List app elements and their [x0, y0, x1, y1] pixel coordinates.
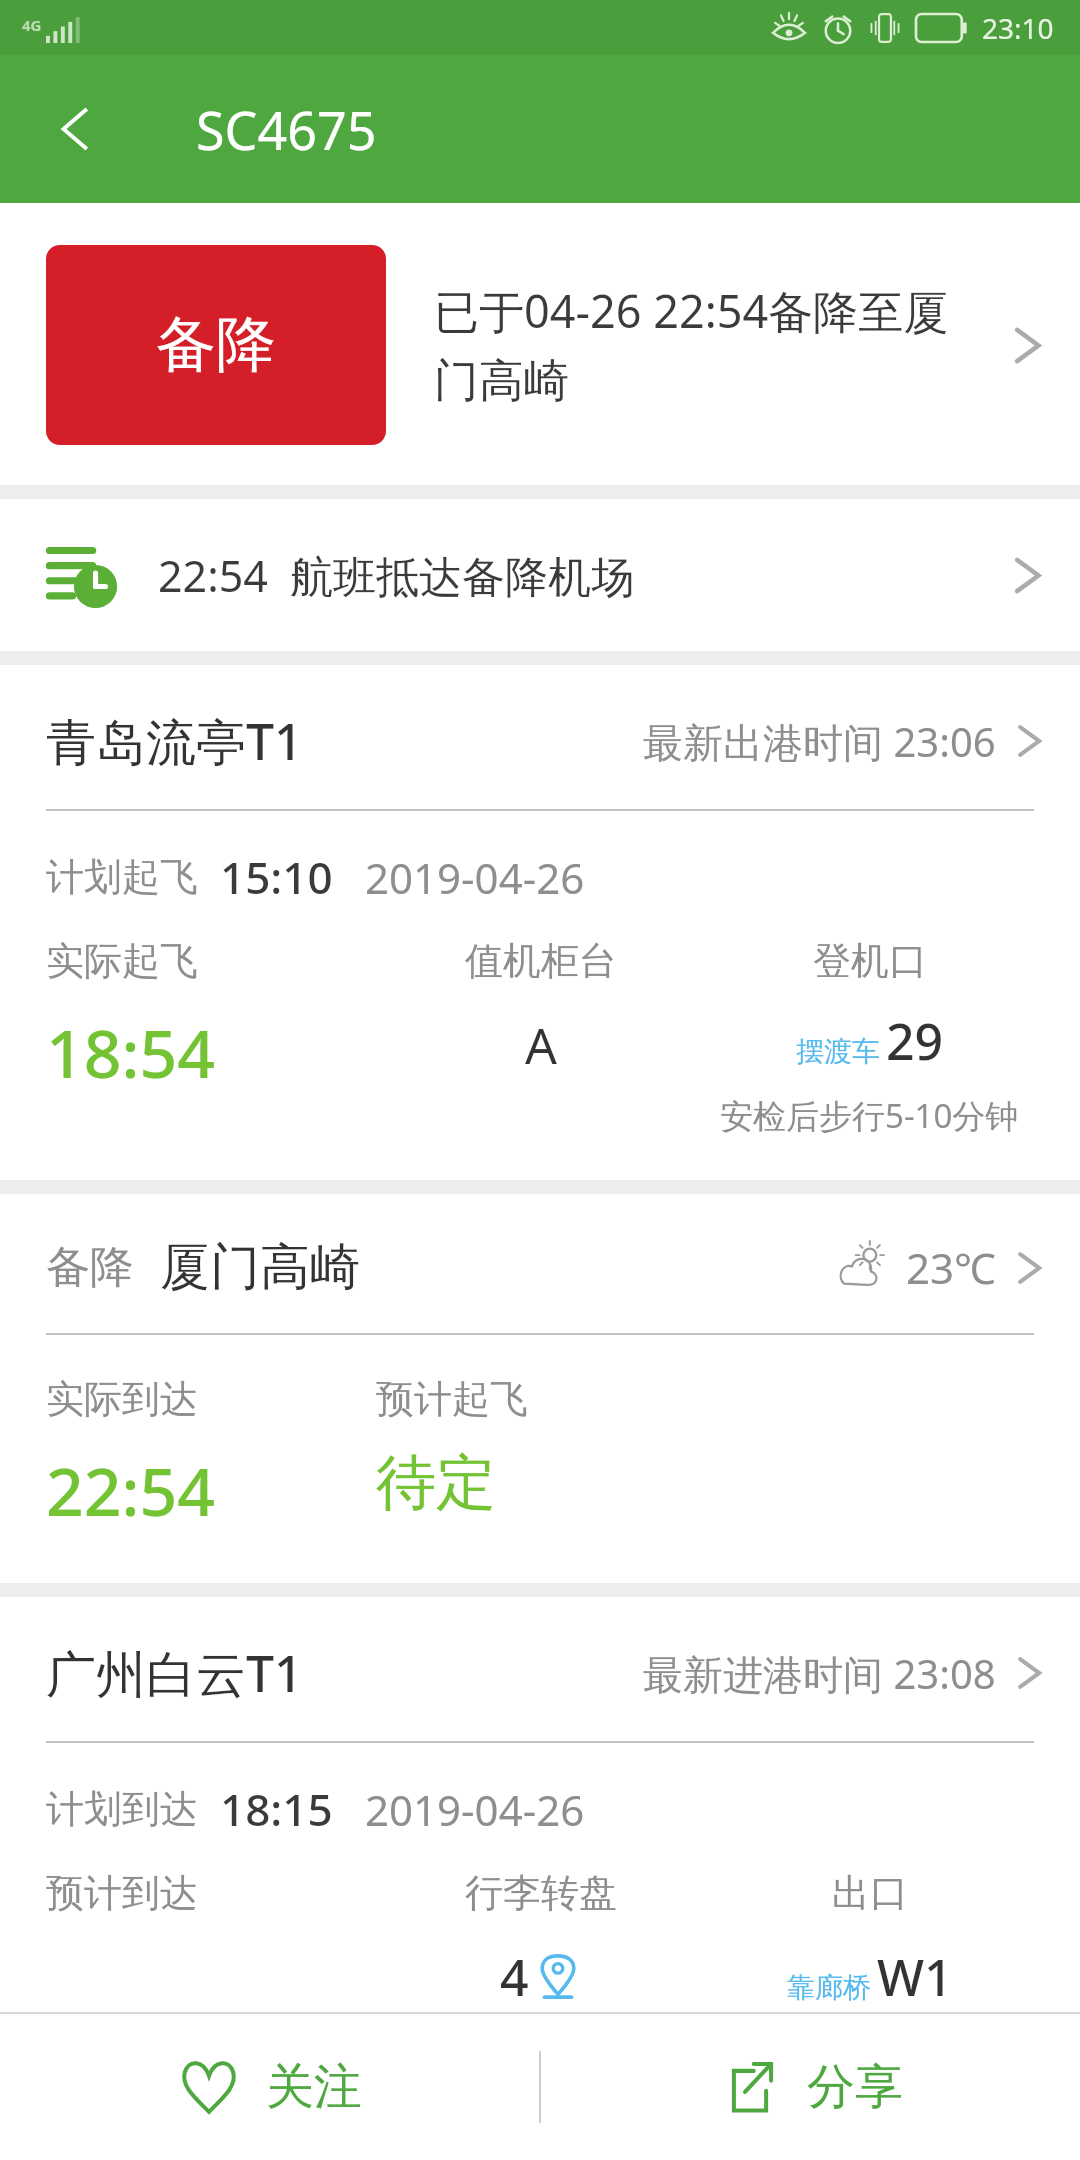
staticText: 23:10 — [982, 9, 1054, 47]
staticText: 分享 — [807, 2057, 903, 2117]
staticText: W1 — [877, 1943, 953, 2011]
button[interactable]: Back — [26, 79, 126, 179]
staticText: 出口 — [832, 1869, 908, 1917]
staticText: 18:54 — [46, 1007, 215, 1097]
staticText: 22:54 航班抵达备降机场 — [158, 546, 1008, 605]
staticText: 安检后步行5-10分钟 — [720, 1093, 1019, 1138]
staticText: 计划到达 — [46, 1785, 198, 1833]
staticText: 实际到达 — [46, 1375, 198, 1423]
staticText: 备降 — [156, 307, 276, 383]
button[interactable]: 22:54 航班抵达备降机场 — [0, 499, 1080, 651]
staticText: 最新出港时间 23:06 — [643, 714, 996, 769]
button[interactable]: 青岛流亭T1 — [0, 665, 1080, 809]
staticText: 待定 — [376, 1445, 496, 1521]
staticText: 23℃ — [906, 1239, 996, 1296]
staticText: 广州白云T1 — [46, 1639, 303, 1707]
staticText: 值机柜台 — [465, 937, 617, 985]
button[interactable]: 分享 — [541, 2014, 1080, 2160]
staticText: 行李转盘 — [465, 1869, 617, 1917]
staticText: 15:10 — [220, 847, 333, 907]
staticText: 计划起飞 — [46, 853, 198, 901]
button[interactable]: 备降 — [0, 203, 1080, 485]
staticText: 实际起飞 — [46, 937, 198, 985]
staticText: 厦门高崎 — [160, 1236, 360, 1299]
staticText: 门高崎 — [434, 353, 569, 410]
staticText: 2019-04-26 — [365, 1781, 585, 1838]
button[interactable]: 广州白云T1 — [0, 1597, 1080, 1741]
staticText: 摆渡车 — [796, 1034, 880, 1069]
staticText: 已于04-26 22:54备降至厦 — [434, 280, 949, 341]
staticText: 2019-04-26 — [365, 849, 585, 906]
staticText: 关注 — [266, 2057, 362, 2117]
staticText: 预计起飞 — [376, 1375, 528, 1423]
staticText: 最新进港时间 23:08 — [643, 1646, 996, 1701]
button[interactable]: 关注 — [0, 2014, 539, 2160]
staticText: 登机口 — [813, 937, 927, 985]
staticText: 4 — [500, 1943, 529, 2011]
staticText: 备降 — [46, 1240, 134, 1295]
staticText: SC4675 — [196, 94, 377, 165]
staticText: 22:54 — [46, 1445, 215, 1535]
staticText: A — [525, 1011, 557, 1079]
button[interactable]: 备降 — [0, 1194, 1080, 1333]
staticText: 预计到达 — [46, 1869, 198, 1917]
staticText: 青岛流亭T1 — [46, 707, 303, 775]
staticText: 29 — [886, 1007, 944, 1075]
staticText: 靠廊桥 — [787, 1970, 871, 2005]
staticText: 4G — [22, 15, 42, 35]
staticText: 18:15 — [220, 1779, 333, 1839]
